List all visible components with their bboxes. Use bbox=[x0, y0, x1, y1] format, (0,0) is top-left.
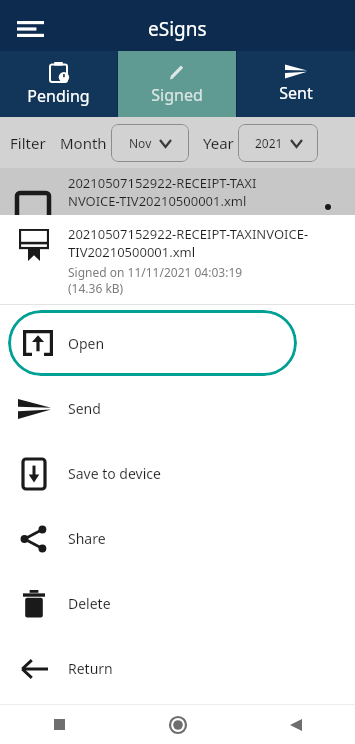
staticText: Save to device bbox=[68, 464, 161, 483]
staticText: eSigns bbox=[148, 16, 207, 42]
button[interactable]: Menu bbox=[10, 9, 50, 49]
staticText: Pending bbox=[27, 85, 90, 107]
button[interactable]: Return bbox=[0, 636, 355, 701]
staticText: 20210507152922-RECEIPT-TAXI bbox=[68, 174, 257, 192]
staticText: 20210507152922-RECEIPT-TAXINVOICE- bbox=[68, 225, 309, 243]
staticText: Send bbox=[68, 399, 101, 418]
button[interactable]: Signed bbox=[118, 51, 236, 117]
staticText: 2021 bbox=[255, 135, 283, 151]
button[interactable]: Open bbox=[8, 310, 297, 376]
staticText: Delete bbox=[68, 594, 111, 613]
button[interactable]: 2021 bbox=[238, 124, 318, 162]
staticText: NVOICE-TIV20210500001.xml bbox=[68, 192, 247, 210]
button[interactable]: Back bbox=[237, 705, 355, 744]
button[interactable]: Home bbox=[119, 705, 237, 744]
staticText: Year bbox=[203, 133, 234, 153]
staticText: (14.36 kB) bbox=[68, 280, 124, 296]
staticText: Open bbox=[68, 334, 105, 353]
staticText: Return bbox=[68, 659, 113, 678]
button[interactable]: Sent bbox=[237, 51, 355, 117]
staticText: Filter bbox=[10, 133, 46, 153]
staticText: Signed on 11/11/2021 04:03:19 bbox=[68, 264, 243, 280]
button[interactable]: Pending bbox=[0, 51, 117, 117]
staticText: Signed bbox=[151, 84, 203, 106]
button[interactable]: Nov bbox=[111, 124, 189, 162]
button[interactable]: Delete bbox=[0, 571, 355, 636]
staticText: Month bbox=[60, 133, 107, 153]
button[interactable]: Save to device bbox=[0, 441, 355, 506]
button[interactable]: Share bbox=[0, 506, 355, 571]
staticText: TIV20210500001.xml bbox=[68, 243, 196, 261]
button[interactable]: Send bbox=[0, 376, 355, 441]
staticText: Sent bbox=[279, 82, 313, 104]
staticText: Nov bbox=[129, 135, 152, 151]
button[interactable]: Recents bbox=[0, 705, 119, 744]
staticText: Share bbox=[68, 529, 106, 548]
